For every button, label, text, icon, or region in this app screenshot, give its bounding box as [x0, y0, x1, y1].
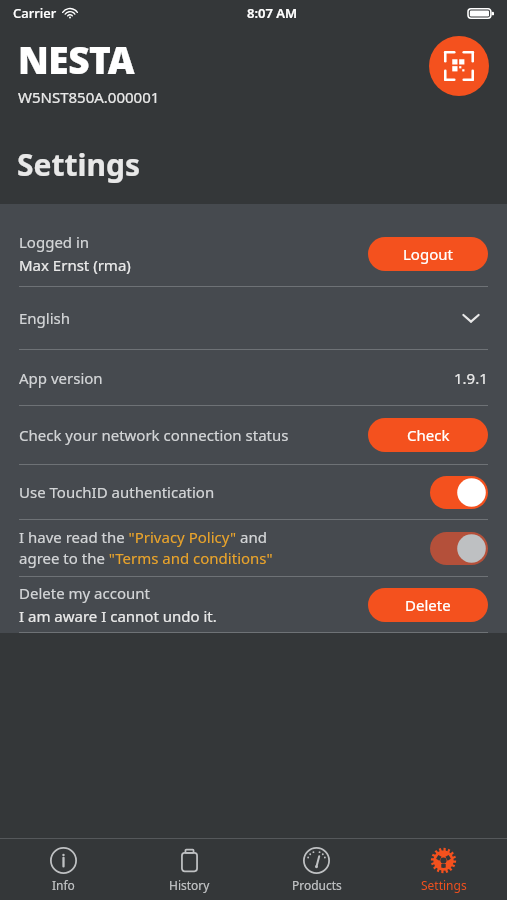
- staticText: Use TouchID authentication: [19, 482, 430, 502]
- staticText: Logout: [403, 244, 453, 264]
- staticText: I am aware I cannot undo it.: [19, 606, 217, 626]
- staticText: I have read the "Privacy Policy" and agr…: [19, 527, 273, 569]
- staticText: Carrier: [13, 4, 57, 22]
- button[interactable]: Toggle off: [430, 532, 488, 565]
- button[interactable]: Info: [0, 839, 126, 900]
- staticText: Logged in: [19, 232, 90, 252]
- staticText: Check: [407, 425, 450, 445]
- staticText: Delete my account: [19, 583, 150, 603]
- staticText: Max Ernst (rma): [19, 255, 131, 275]
- button[interactable]: Logout: [368, 237, 488, 271]
- button[interactable]: History: [126, 839, 253, 900]
- staticText: NESTA: [18, 34, 135, 84]
- button[interactable]: Delete: [368, 588, 488, 622]
- staticText: Products: [292, 877, 342, 893]
- button[interactable]: Check: [368, 418, 488, 452]
- staticText: Settings: [17, 144, 140, 185]
- staticText: 1.9.1: [454, 368, 488, 388]
- staticText: 8:07 AM: [247, 4, 298, 22]
- staticText: Settings: [421, 877, 467, 893]
- button[interactable]: Toggle on: [430, 476, 488, 509]
- button[interactable]: Scan QR code: [429, 36, 489, 96]
- staticText: W5NST850A.000001: [18, 87, 160, 107]
- staticText: App version: [19, 368, 454, 388]
- staticText: English: [19, 308, 454, 328]
- staticText: Delete: [405, 595, 451, 615]
- staticText: Check your network connection status: [19, 425, 368, 445]
- button[interactable]: Change language: [454, 301, 488, 335]
- button[interactable]: Products: [253, 839, 380, 900]
- staticText: Info: [52, 877, 75, 893]
- staticText: History: [169, 877, 210, 893]
- button[interactable]: Settings: [380, 839, 507, 900]
